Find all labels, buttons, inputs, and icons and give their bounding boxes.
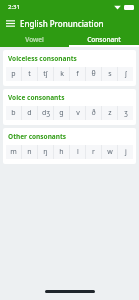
staticText: s <box>108 69 112 79</box>
staticText: m <box>10 147 17 157</box>
staticText: j <box>125 147 127 157</box>
button[interactable]: dʒ <box>38 106 53 120</box>
button[interactable]: Consonant <box>69 33 139 45</box>
button[interactable]: v <box>70 106 85 120</box>
staticText: ʃ <box>125 69 127 79</box>
staticText: dʒ <box>42 108 50 118</box>
button[interactable]: ð <box>86 106 101 120</box>
button[interactable]: b <box>6 106 21 120</box>
staticText: r <box>92 147 95 157</box>
staticText: l <box>77 147 79 157</box>
staticText: Vowel <box>25 35 44 44</box>
staticText: t <box>28 69 31 79</box>
button[interactable]: l <box>70 145 85 159</box>
staticText: z <box>108 108 112 118</box>
button[interactable]: r <box>86 145 101 159</box>
staticText: v <box>76 108 80 118</box>
button[interactable]: tʃ <box>38 67 53 81</box>
staticText: h <box>59 147 64 157</box>
button[interactable]: ʒ <box>118 106 133 120</box>
staticText: ŋ <box>43 147 48 157</box>
staticText: Voiceless consonants <box>8 54 77 63</box>
button[interactable]: d <box>22 106 37 120</box>
staticText: g <box>59 108 64 118</box>
staticText: n <box>27 147 32 157</box>
button[interactable]: k <box>54 67 69 81</box>
staticText: tʃ <box>43 69 48 79</box>
button[interactable]: m <box>6 145 21 159</box>
button[interactable]: s <box>102 67 117 81</box>
staticText: 2:31 <box>8 3 20 11</box>
button[interactable]: ŋ <box>38 145 53 159</box>
button[interactable]: t <box>22 67 37 81</box>
button[interactable]: h <box>54 145 69 159</box>
staticText: p <box>11 69 16 79</box>
staticText: k <box>60 69 64 79</box>
button[interactable]: g <box>54 106 69 120</box>
button[interactable]: p <box>6 67 21 81</box>
staticText: f <box>76 69 79 79</box>
staticText: Voice consonants <box>8 93 65 102</box>
button[interactable]: θ <box>86 67 101 81</box>
button[interactable]: j <box>118 145 133 159</box>
staticText: Other consonants <box>8 132 67 141</box>
staticText: English Pronunciation <box>20 18 104 29</box>
button[interactable]: f <box>70 67 85 81</box>
staticText: Consonant <box>87 35 121 44</box>
button[interactable]: w <box>102 145 117 159</box>
staticText: d <box>27 108 32 118</box>
staticText: ð <box>91 108 96 118</box>
staticText: θ <box>91 69 96 79</box>
button[interactable]: Vowel <box>0 33 69 45</box>
staticText: b <box>11 108 16 118</box>
button[interactable]: Open navigation menu <box>0 14 20 33</box>
button[interactable]: z <box>102 106 117 120</box>
staticText: w <box>107 147 113 157</box>
staticText: ʒ <box>124 108 128 118</box>
button[interactable]: n <box>22 145 37 159</box>
button[interactable]: ʃ <box>118 67 133 81</box>
